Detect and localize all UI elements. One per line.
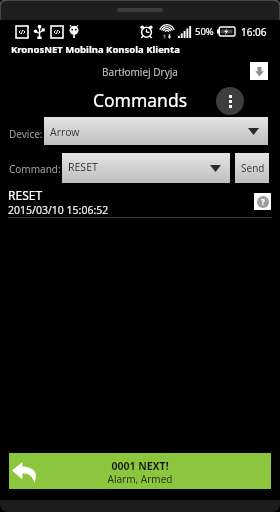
button[interactable]: RESET — [0, 185, 280, 217]
staticText: Arrow — [50, 125, 80, 139]
staticText: Alarm, Armed — [9, 472, 271, 486]
button[interactable]: 0001 NEXT! — [9, 453, 271, 489]
staticText: 0001 NEXT! — [9, 459, 271, 473]
button[interactable]: Download — [250, 62, 268, 80]
staticText: Device: — [9, 127, 43, 141]
staticText: ? — [261, 196, 265, 207]
staticText: RESET — [68, 160, 98, 174]
staticText: Bartłomiej Dryja — [0, 65, 280, 79]
staticText: RESET — [8, 187, 43, 203]
staticText: 16:06 — [241, 25, 267, 39]
staticText: 2015/03/10 15:06:52 — [8, 203, 109, 217]
staticText: KronosNET Mobilna Konsola Klienta — [11, 43, 180, 56]
staticText: Send — [241, 161, 265, 175]
staticText: Command: — [9, 162, 61, 176]
button[interactable]: Arrow — [44, 117, 268, 145]
button[interactable]: More options — [216, 87, 244, 115]
staticText: 50% — [195, 25, 214, 38]
button[interactable]: RESET — [62, 153, 230, 183]
button[interactable]: Send — [235, 153, 269, 183]
staticText: Commands — [0, 88, 280, 112]
button[interactable]: Help — [254, 193, 271, 210]
